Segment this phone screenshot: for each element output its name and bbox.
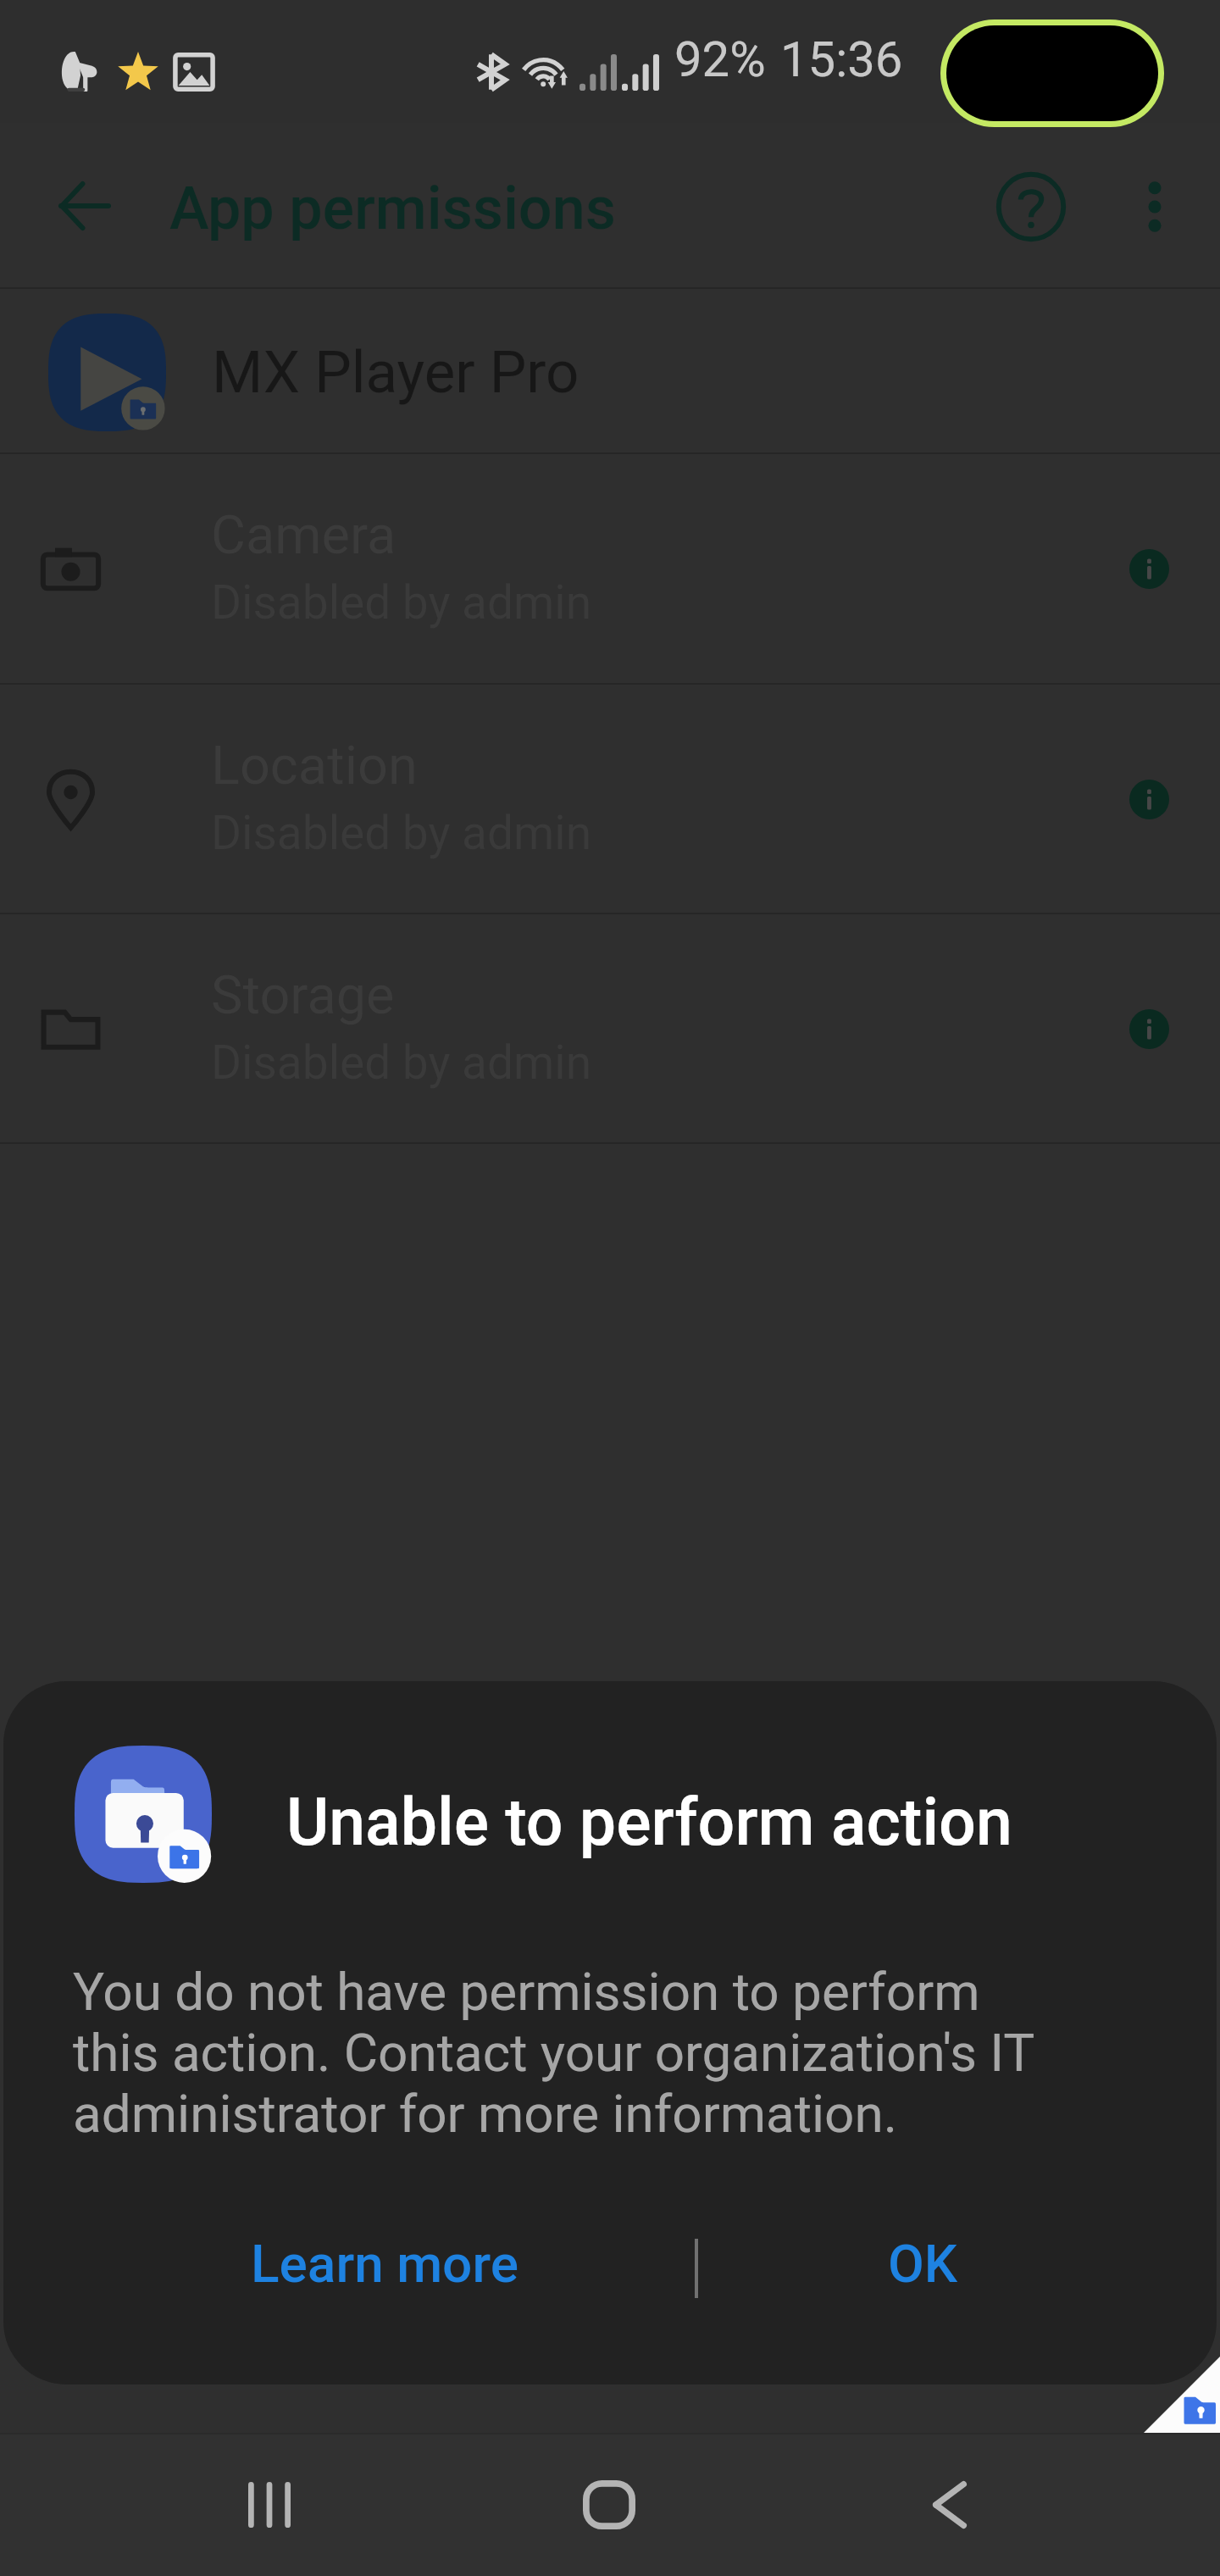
button[interactable]: More options xyxy=(1108,160,1201,253)
staticText: Learn more xyxy=(251,2233,518,2295)
staticText: 15:36 xyxy=(780,31,903,88)
button[interactable]: MX Player Pro xyxy=(0,289,1220,452)
button[interactable]: Home xyxy=(558,2454,660,2556)
staticText: OK xyxy=(888,2233,957,2295)
button[interactable]: Recent apps xyxy=(219,2454,320,2556)
staticText: Disabled by admin xyxy=(211,575,592,630)
button[interactable]: Info xyxy=(1110,760,1188,838)
staticText: Location xyxy=(211,735,418,797)
button[interactable]: Info xyxy=(1110,990,1188,1068)
button[interactable]: Info xyxy=(1110,530,1188,608)
staticText: Disabled by admin xyxy=(211,806,592,860)
button[interactable]: Back xyxy=(899,2454,1001,2556)
button[interactable]: Back xyxy=(38,159,131,253)
button[interactable]: Learn more xyxy=(122,2194,647,2334)
staticText: MX Player Pro xyxy=(212,338,579,407)
button[interactable]: Location xyxy=(0,685,1220,913)
staticText: Storage xyxy=(211,964,395,1027)
staticText: You do not have permission to perform th… xyxy=(73,1961,1035,2145)
staticText: 92% xyxy=(674,31,766,88)
button[interactable]: Storage xyxy=(0,914,1220,1143)
staticText: Disabled by admin xyxy=(211,1035,592,1090)
staticText: Unable to perform action xyxy=(286,1785,1012,1861)
staticText: App permissions xyxy=(169,174,616,243)
button[interactable]: Camera xyxy=(0,454,1220,683)
button[interactable]: Help xyxy=(984,160,1078,253)
button[interactable]: OK xyxy=(732,2194,1113,2334)
staticText: Camera xyxy=(211,504,396,567)
